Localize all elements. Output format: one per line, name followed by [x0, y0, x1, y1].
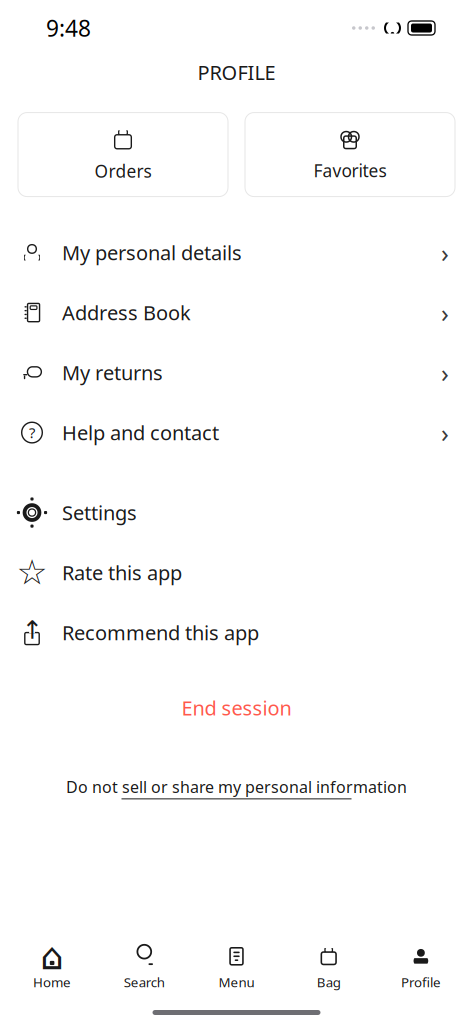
staticText: PROFILE — [197, 59, 275, 86]
staticText: ⌂ — [40, 935, 64, 977]
staticText: Orders — [94, 160, 151, 183]
button[interactable]: My personal details — [0, 223, 473, 283]
staticText: Search — [124, 973, 165, 991]
button[interactable]: Bag — [283, 939, 375, 996]
button[interactable]: Menu — [190, 939, 283, 996]
button[interactable]: Profile — [375, 939, 467, 996]
staticText: My personal details — [62, 239, 242, 266]
button[interactable]: End session — [0, 686, 473, 730]
staticText: Address Book — [62, 299, 191, 326]
button[interactable]: Do not sell or share my personal informa… — [66, 770, 407, 805]
staticText: Recommend this app — [62, 619, 259, 646]
staticText: › — [441, 356, 449, 389]
button[interactable]: Address Book — [0, 283, 473, 343]
staticText: ☆ — [16, 553, 47, 592]
staticText: End session — [181, 695, 291, 721]
button[interactable]: ⌂ — [6, 939, 98, 996]
button[interactable]: Favorites — [245, 113, 455, 197]
staticText: Rate this app — [62, 559, 182, 586]
button[interactable]: Search — [98, 939, 190, 996]
staticText: › — [441, 236, 449, 269]
button[interactable]: ? — [0, 403, 473, 463]
button[interactable]: My returns — [0, 343, 473, 403]
button[interactable]: ↑ — [0, 603, 473, 663]
staticText: Menu — [218, 973, 254, 991]
staticText: Home — [33, 973, 71, 991]
button[interactable]: Orders — [18, 113, 228, 197]
button[interactable]: ☆ — [0, 543, 473, 603]
staticText: › — [441, 296, 449, 329]
staticText: Favorites — [313, 159, 386, 182]
staticText: Help and contact — [62, 419, 219, 446]
staticText: ↑ — [21, 615, 42, 644]
staticText: My returns — [62, 359, 163, 386]
staticText: Bag — [317, 973, 341, 991]
staticText: 9:48 — [46, 13, 91, 43]
button[interactable]: Settings — [0, 483, 473, 543]
staticText: Settings — [62, 499, 137, 526]
staticText: › — [441, 416, 449, 449]
staticText: Profile — [401, 973, 441, 991]
staticText: ? — [29, 423, 35, 442]
staticText: Do not sell or share my personal informa… — [66, 776, 407, 797]
